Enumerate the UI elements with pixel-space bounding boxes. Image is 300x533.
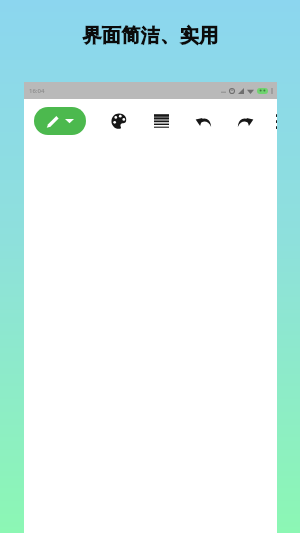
button[interactable]: Pen tool <box>34 107 86 135</box>
button[interactable]: Redo <box>234 110 256 132</box>
staticText: 界面简洁、实用 <box>82 24 219 48</box>
button[interactable]: Line style <box>150 110 172 132</box>
button[interactable]: Undo <box>192 110 214 132</box>
staticText: 16:04 <box>29 87 45 95</box>
button[interactable]: Colour palette <box>108 110 130 132</box>
button[interactable]: More options <box>276 110 277 132</box>
